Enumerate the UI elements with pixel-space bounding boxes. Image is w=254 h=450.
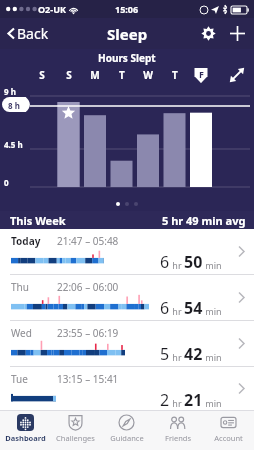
button[interactable]: Dashboard	[0, 411, 50, 450]
staticText: 2	[160, 389, 170, 411]
staticText: min	[203, 397, 222, 409]
staticText: 4.5 h	[4, 139, 23, 150]
button[interactable]: Tue	[0, 367, 254, 410]
staticText: M	[89, 68, 101, 82]
staticText: Tue	[11, 372, 28, 386]
staticText: T	[116, 68, 128, 82]
staticText: 50	[184, 251, 203, 273]
staticText: 42	[184, 343, 203, 365]
staticText: 9 h	[4, 86, 16, 97]
button[interactable]: Account	[203, 411, 254, 450]
staticText: Thu	[11, 280, 29, 294]
button[interactable]: Friends	[152, 411, 203, 450]
button[interactable]: Guidance	[101, 411, 152, 450]
staticText: S	[36, 68, 48, 82]
staticText: min	[203, 305, 222, 317]
staticText: W	[142, 68, 154, 82]
staticText: Back	[17, 24, 49, 43]
button[interactable]: Today	[0, 229, 254, 274]
staticText: This Week	[10, 213, 66, 228]
staticText: min	[203, 351, 222, 363]
staticText: 8 h	[8, 100, 20, 111]
button[interactable]: Add	[227, 23, 248, 44]
staticText: Dashboard	[5, 433, 46, 443]
staticText: hr	[170, 305, 184, 317]
staticText: 21	[184, 389, 203, 411]
staticText: Challenges	[56, 433, 95, 443]
staticText: 21:47 – 05:48	[57, 234, 119, 248]
staticText: 13:15 – 15:41	[57, 372, 119, 386]
staticText: 22:06 – 06:00	[57, 280, 119, 294]
staticText: 5 hr 49 min avg	[162, 213, 246, 228]
staticText: hr	[170, 397, 184, 409]
staticText: Sleep	[107, 24, 148, 44]
staticText: min	[203, 259, 222, 271]
button[interactable]: Wed	[0, 321, 254, 366]
staticText: 15:06	[115, 3, 139, 15]
button[interactable]: Expand	[229, 67, 245, 83]
staticText: 54	[184, 297, 203, 319]
button[interactable]: Challenges	[50, 411, 101, 450]
staticText: Hours Slept	[98, 51, 156, 65]
staticText: hr	[170, 259, 184, 271]
button[interactable]: Settings	[198, 23, 219, 44]
staticText: O2-UK	[38, 3, 66, 15]
staticText: Friends	[165, 433, 191, 443]
staticText: 0	[4, 177, 9, 188]
staticText: T	[169, 68, 181, 82]
staticText: 6	[160, 297, 170, 319]
button[interactable]: Back	[5, 21, 51, 46]
staticText: Account	[214, 433, 243, 443]
staticText: Wed	[11, 326, 32, 340]
staticText: 5	[160, 343, 170, 365]
staticText: 6	[160, 251, 170, 273]
staticText: hr	[170, 351, 184, 363]
staticText: Guidance	[110, 433, 144, 443]
staticText: F	[199, 68, 204, 80]
button[interactable]: Thu	[0, 275, 254, 320]
staticText: 23:55 – 06:19	[57, 326, 119, 340]
staticText: Today	[11, 234, 41, 248]
staticText: S	[63, 68, 75, 82]
